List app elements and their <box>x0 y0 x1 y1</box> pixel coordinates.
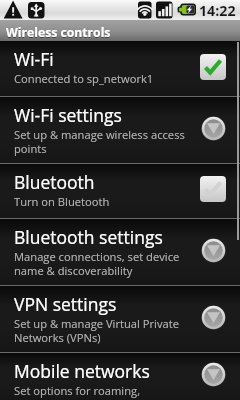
button[interactable]: Mobile networks <box>0 353 240 400</box>
staticText: Bluetooth settings <box>14 225 163 249</box>
button[interactable]: Open settings <box>201 116 226 141</box>
staticText: Connected to sp_network1 <box>14 71 154 86</box>
staticText: Wireless controls <box>6 25 111 41</box>
button[interactable]: Wi-Fi <box>0 41 240 96</box>
button[interactable]: Disabled <box>200 176 226 202</box>
staticText: VPN settings <box>14 292 117 316</box>
staticText: Wi-Fi settings <box>14 103 122 127</box>
button[interactable]: Enabled <box>200 54 226 80</box>
staticText: 14:22 <box>199 1 236 20</box>
staticText: Wireless controls <box>6 24 111 41</box>
staticText: Manage connections, set device name & di… <box>14 249 188 279</box>
staticText: Set up & manage Virtual Private Networks… <box>14 316 188 346</box>
staticText: Bluetooth <box>14 170 95 194</box>
button[interactable]: Bluetooth <box>0 164 240 218</box>
button[interactable]: Open settings <box>201 238 226 263</box>
button[interactable]: Bluetooth settings <box>0 219 240 285</box>
staticText: Set options for roaming, networks, APNs <box>14 383 188 400</box>
button[interactable]: Open settings <box>201 305 226 330</box>
staticText: Set up & manage wireless access points <box>14 127 188 157</box>
staticText: Wi-Fi <box>14 47 54 71</box>
button[interactable]: Wi-Fi settings <box>0 97 240 163</box>
staticText: Mobile networks <box>14 359 150 383</box>
button[interactable]: Open settings <box>201 362 226 387</box>
button[interactable]: VPN settings <box>0 286 240 352</box>
staticText: Turn on Bluetooth <box>14 194 110 209</box>
